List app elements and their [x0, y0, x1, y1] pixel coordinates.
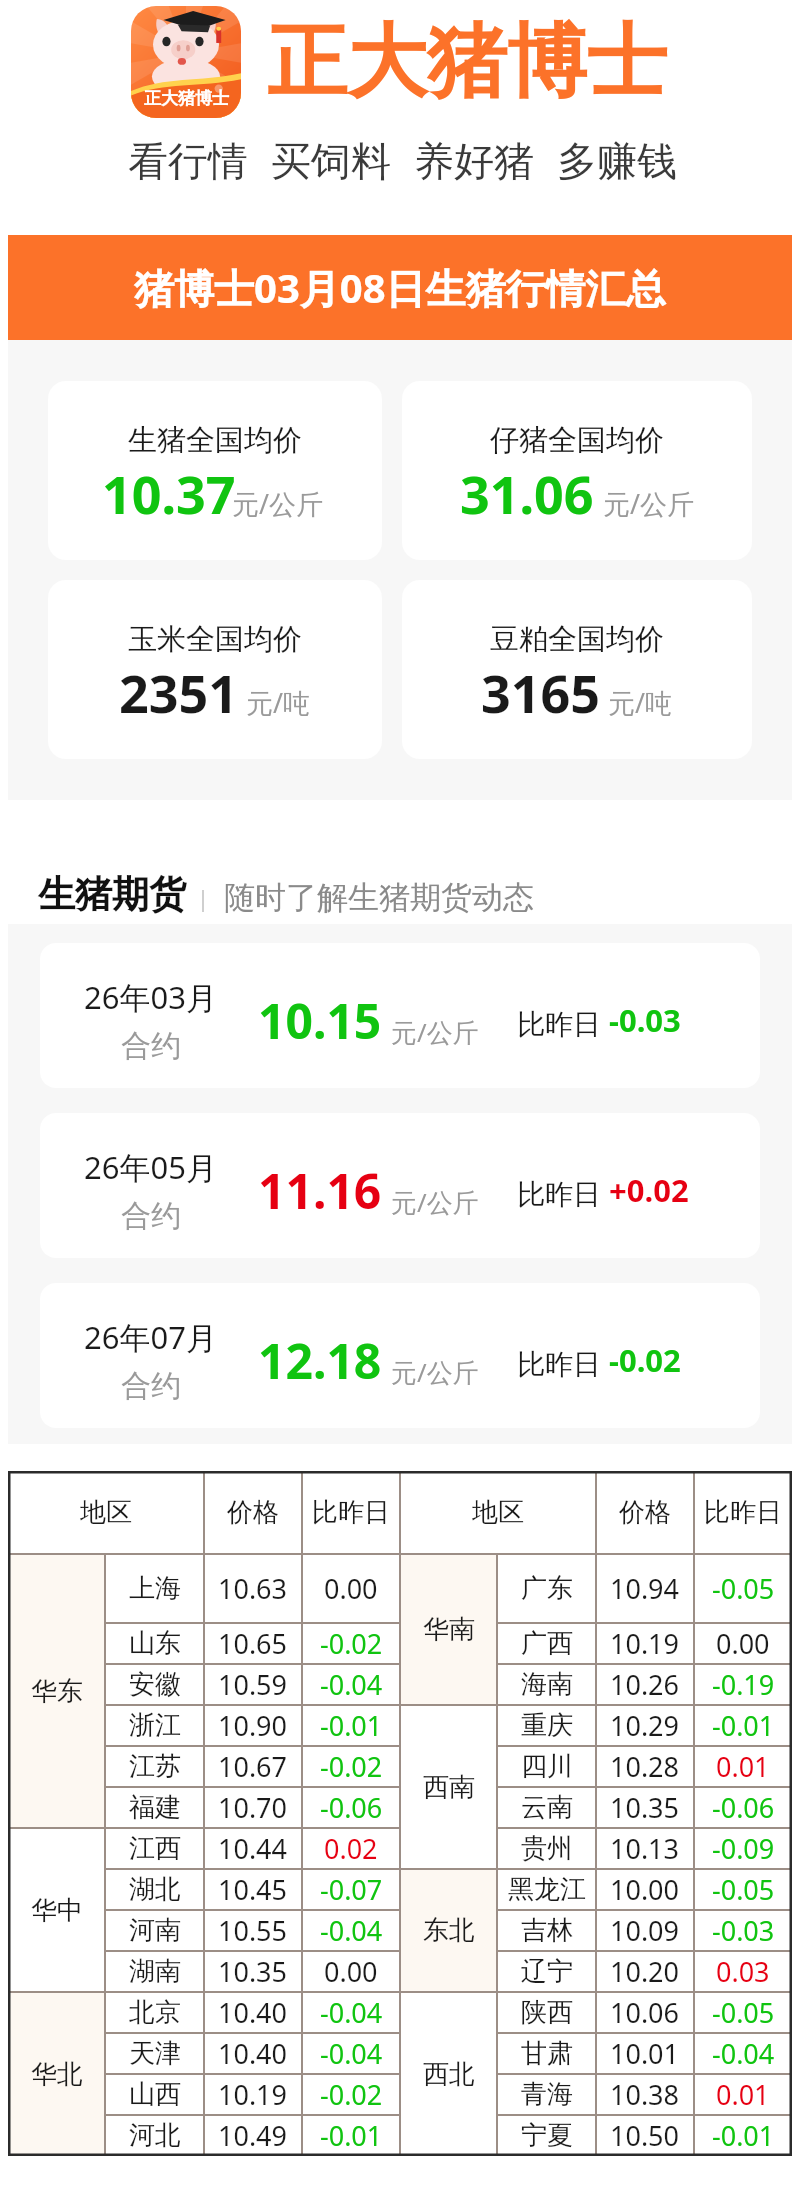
- staticText: 宁夏: [521, 2119, 573, 2152]
- button[interactable]: 上海: [105, 1554, 400, 1623]
- button[interactable]: 26年05月: [40, 1113, 760, 1258]
- button[interactable]: 玉米全国均价: [48, 580, 382, 759]
- staticText: 10.55: [218, 1912, 288, 1949]
- button[interactable]: 26年03月: [40, 943, 760, 1088]
- staticText: 河北: [129, 2119, 181, 2152]
- staticText: 广东: [521, 1572, 573, 1605]
- button[interactable]: 吉林: [497, 1910, 792, 1951]
- button[interactable]: 山西: [105, 2074, 400, 2115]
- button[interactable]: 买饲料: [271, 136, 391, 186]
- staticText: 陕西: [521, 1996, 573, 2029]
- button[interactable]: 广西: [497, 1623, 792, 1664]
- staticText: 10.28: [610, 1748, 680, 1785]
- button[interactable]: 豆粕全国均价: [402, 580, 752, 759]
- staticText: 湖北: [129, 1873, 181, 1906]
- button[interactable]: 四川: [497, 1746, 792, 1787]
- button[interactable]: 辽宁: [497, 1951, 792, 1992]
- staticText: 买饲料: [271, 136, 391, 186]
- staticText: 豆粕全国均价: [490, 621, 664, 658]
- button[interactable]: 云南: [497, 1787, 792, 1828]
- button[interactable]: 仔猪全国均价: [402, 381, 752, 560]
- staticText: 贵州: [521, 1832, 573, 1865]
- button[interactable]: 生猪全国均价: [48, 381, 382, 560]
- staticText: 生猪期货: [38, 871, 186, 918]
- staticText: 猪博士03月08日生猪行情汇总: [134, 260, 666, 315]
- staticText: 10.15: [258, 988, 382, 1053]
- button[interactable]: 青海: [497, 2074, 792, 2115]
- button[interactable]: 海南: [497, 1664, 792, 1705]
- staticText: 比昨日: [517, 1347, 601, 1382]
- staticText: -0.04: [320, 1994, 383, 2031]
- staticText: 比昨日: [517, 1177, 601, 1212]
- button[interactable]: 湖北: [105, 1869, 400, 1910]
- staticText: +0.02: [609, 1169, 689, 1211]
- button[interactable]: 宁夏: [497, 2115, 792, 2156]
- button[interactable]: 甘肃: [497, 2033, 792, 2074]
- button[interactable]: 山东: [105, 1623, 400, 1664]
- staticText: -0.05: [712, 1570, 775, 1607]
- button[interactable]: 重庆: [497, 1705, 792, 1746]
- staticText: 31.06: [460, 458, 594, 529]
- button[interactable]: 陕西: [497, 1992, 792, 2033]
- staticText: 吉林: [521, 1914, 573, 1947]
- staticText: 比昨日: [312, 1496, 390, 1529]
- button[interactable]: 福建: [105, 1787, 400, 1828]
- staticText: 元/公斤: [391, 1184, 479, 1220]
- staticText: 价格: [619, 1496, 671, 1529]
- staticText: 元/吨: [608, 684, 673, 721]
- button[interactable]: 河南: [105, 1910, 400, 1951]
- button[interactable]: 江西: [105, 1828, 400, 1869]
- button[interactable]: 养好猪: [414, 136, 534, 186]
- staticText: 10.09: [610, 1912, 680, 1949]
- staticText: -0.03: [712, 1912, 775, 1949]
- staticText: 广西: [521, 1627, 573, 1660]
- staticText: 西南: [423, 1771, 475, 1804]
- button[interactable]: 黑龙江: [497, 1869, 792, 1910]
- staticText: 上海: [129, 1572, 181, 1605]
- staticText: 2351: [119, 657, 238, 728]
- staticText: -0.02: [609, 1339, 681, 1381]
- button[interactable]: 猪博士03月08日生猪行情汇总: [8, 235, 792, 340]
- staticText: 10.13: [610, 1830, 680, 1867]
- staticText: 0.00: [324, 1570, 378, 1607]
- button[interactable]: 江苏: [105, 1746, 400, 1787]
- button[interactable]: 天津: [105, 2033, 400, 2074]
- staticText: 10.90: [218, 1707, 288, 1744]
- button[interactable]: 多赚钱: [557, 136, 677, 186]
- staticText: -0.06: [320, 1789, 383, 1826]
- staticText: -0.09: [712, 1830, 775, 1867]
- staticText: 10.20: [610, 1953, 680, 1990]
- staticText: 10.63: [218, 1570, 288, 1607]
- button[interactable]: 广东: [497, 1554, 792, 1623]
- staticText: 华南: [423, 1613, 475, 1646]
- staticText: 10.40: [218, 2035, 288, 2072]
- staticText: 10.67: [218, 1748, 288, 1785]
- button[interactable]: 浙江: [105, 1705, 400, 1746]
- staticText: -0.04: [320, 2035, 383, 2072]
- staticText: -0.01: [320, 2117, 383, 2154]
- button[interactable]: 北京: [105, 1992, 400, 2033]
- button[interactable]: 26年07月: [40, 1283, 760, 1428]
- staticText: 正大猪博士: [144, 88, 229, 109]
- staticText: 地区: [80, 1496, 132, 1529]
- staticText: 10.40: [218, 1994, 288, 2031]
- staticText: 河南: [129, 1914, 181, 1947]
- staticText: 养好猪: [414, 136, 534, 186]
- button[interactable]: 湖南: [105, 1951, 400, 1992]
- staticText: 黑龙江: [508, 1873, 586, 1906]
- staticText: 比昨日: [517, 1007, 601, 1042]
- button[interactable]: 看行情: [128, 136, 248, 186]
- staticText: -0.01: [320, 1707, 383, 1744]
- button[interactable]: 贵州: [497, 1828, 792, 1869]
- staticText: 元/公斤: [391, 1354, 479, 1390]
- staticText: 10.37: [102, 458, 236, 529]
- staticText: 云南: [521, 1791, 573, 1824]
- staticText: 10.26: [610, 1666, 680, 1703]
- staticText: 元/公斤: [391, 1014, 479, 1050]
- button[interactable]: 安徽: [105, 1664, 400, 1705]
- staticText: -0.06: [712, 1789, 775, 1826]
- staticText: 比昨日: [704, 1496, 782, 1529]
- staticText: 东北: [423, 1914, 475, 1947]
- button[interactable]: 河北: [105, 2115, 400, 2156]
- staticText: 青海: [521, 2078, 573, 2111]
